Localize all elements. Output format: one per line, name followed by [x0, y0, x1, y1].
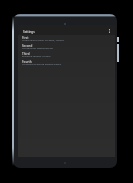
staticText: First [22, 36, 29, 40]
staticText: Ut labore et dolore magna aliqua [22, 62, 61, 65]
button[interactable]: Third [18, 52, 115, 60]
staticText: Third [22, 52, 30, 56]
staticText: Fourth [22, 60, 32, 64]
button[interactable]: Second [18, 44, 115, 52]
staticText: Eiusmod tempor ut labo [22, 54, 51, 57]
staticText: Consectetur adipiscing elit [22, 46, 54, 49]
button[interactable]: First [18, 36, 115, 44]
staticText: Settings [23, 30, 35, 34]
button[interactable]: Fourth [18, 60, 115, 68]
staticText: Lorem ipsum dolor sit amet, consec [22, 38, 64, 41]
staticText: Second [22, 44, 33, 48]
button[interactable]: More options [105, 26, 114, 35]
